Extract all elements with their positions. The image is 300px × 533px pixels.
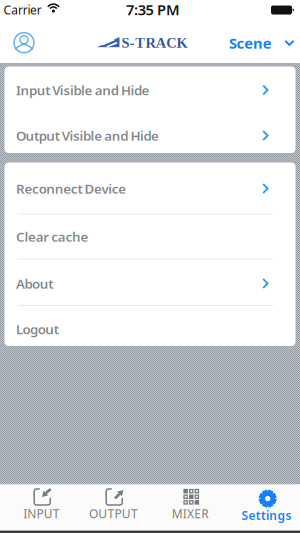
staticText: S-TRACK [121,35,188,51]
staticText: MIXER [172,505,208,521]
button[interactable]: Reconnect Device [4,167,295,210]
staticText: Clear cache [16,228,88,245]
button[interactable]: INPUT [5,484,77,533]
button[interactable]: Logout [4,307,295,350]
staticText: Carrier [4,2,42,18]
staticText: 7:35 PM [126,0,180,19]
button[interactable]: About [4,262,295,305]
button[interactable]: MIXER [154,484,226,533]
staticText: Reconnect Device [16,180,126,197]
staticText: Input Visible and Hide [16,81,149,99]
staticText: Scene [229,33,272,53]
staticText: Logout [16,320,59,338]
staticText: About [16,275,53,292]
button[interactable]: Settings [230,484,300,533]
staticText: INPUT [23,505,60,521]
staticText: Output Visible and Hide [16,127,159,144]
staticText: Settings [241,507,292,523]
button[interactable]: Input Visible and Hide [4,68,295,111]
button[interactable]: Clear cache [4,215,295,258]
staticText: OUTPUT [89,505,138,521]
button[interactable]: Scene [225,26,297,60]
button[interactable]: OUTPUT [77,484,149,533]
button[interactable]: Output Visible and Hide [4,114,295,157]
button[interactable]: Account [9,28,39,58]
